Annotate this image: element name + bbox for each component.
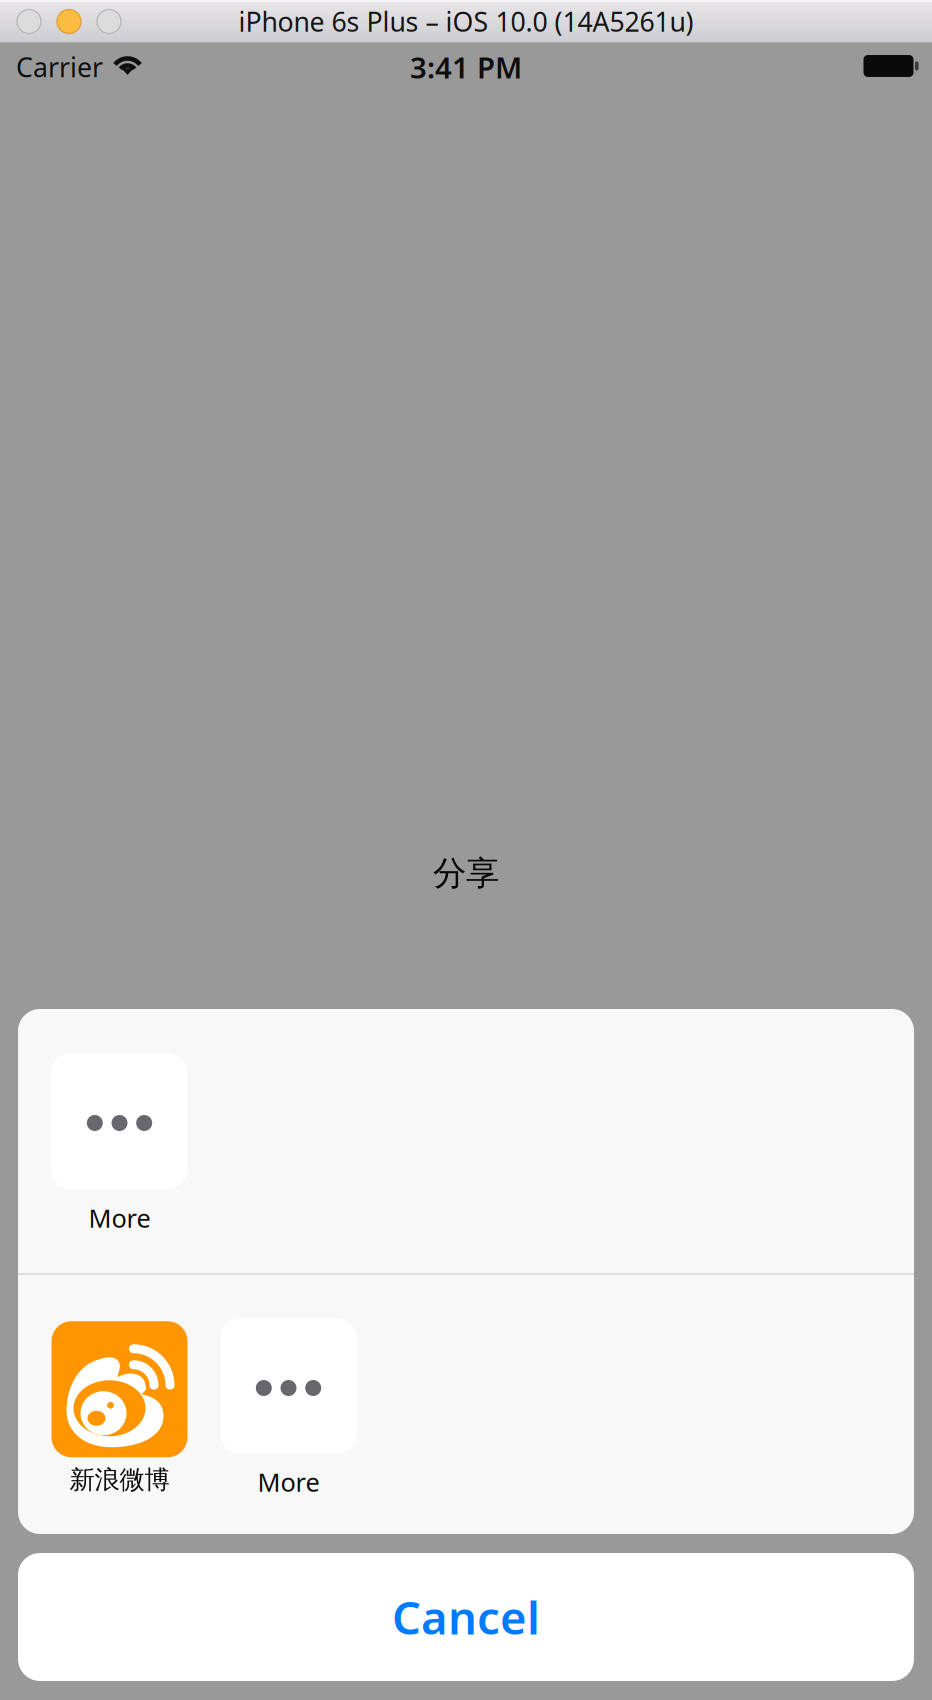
staticText: 分享 <box>433 853 499 894</box>
staticText: 新浪微博 <box>69 1464 169 1495</box>
staticText: Cancel <box>392 1587 540 1647</box>
button[interactable]: Cancel <box>18 1553 914 1681</box>
button[interactable]: 新浪微博 <box>35 1321 204 1495</box>
staticText: More <box>88 1201 150 1235</box>
staticText: More <box>257 1465 319 1499</box>
staticText: iPhone 6s Plus – iOS 10.0 (14A5261u) <box>238 4 693 39</box>
button[interactable]: More <box>35 1053 204 1235</box>
staticText: 3:41 PM <box>410 47 522 86</box>
staticText: Carrier <box>16 49 103 85</box>
button[interactable]: More <box>204 1318 373 1499</box>
